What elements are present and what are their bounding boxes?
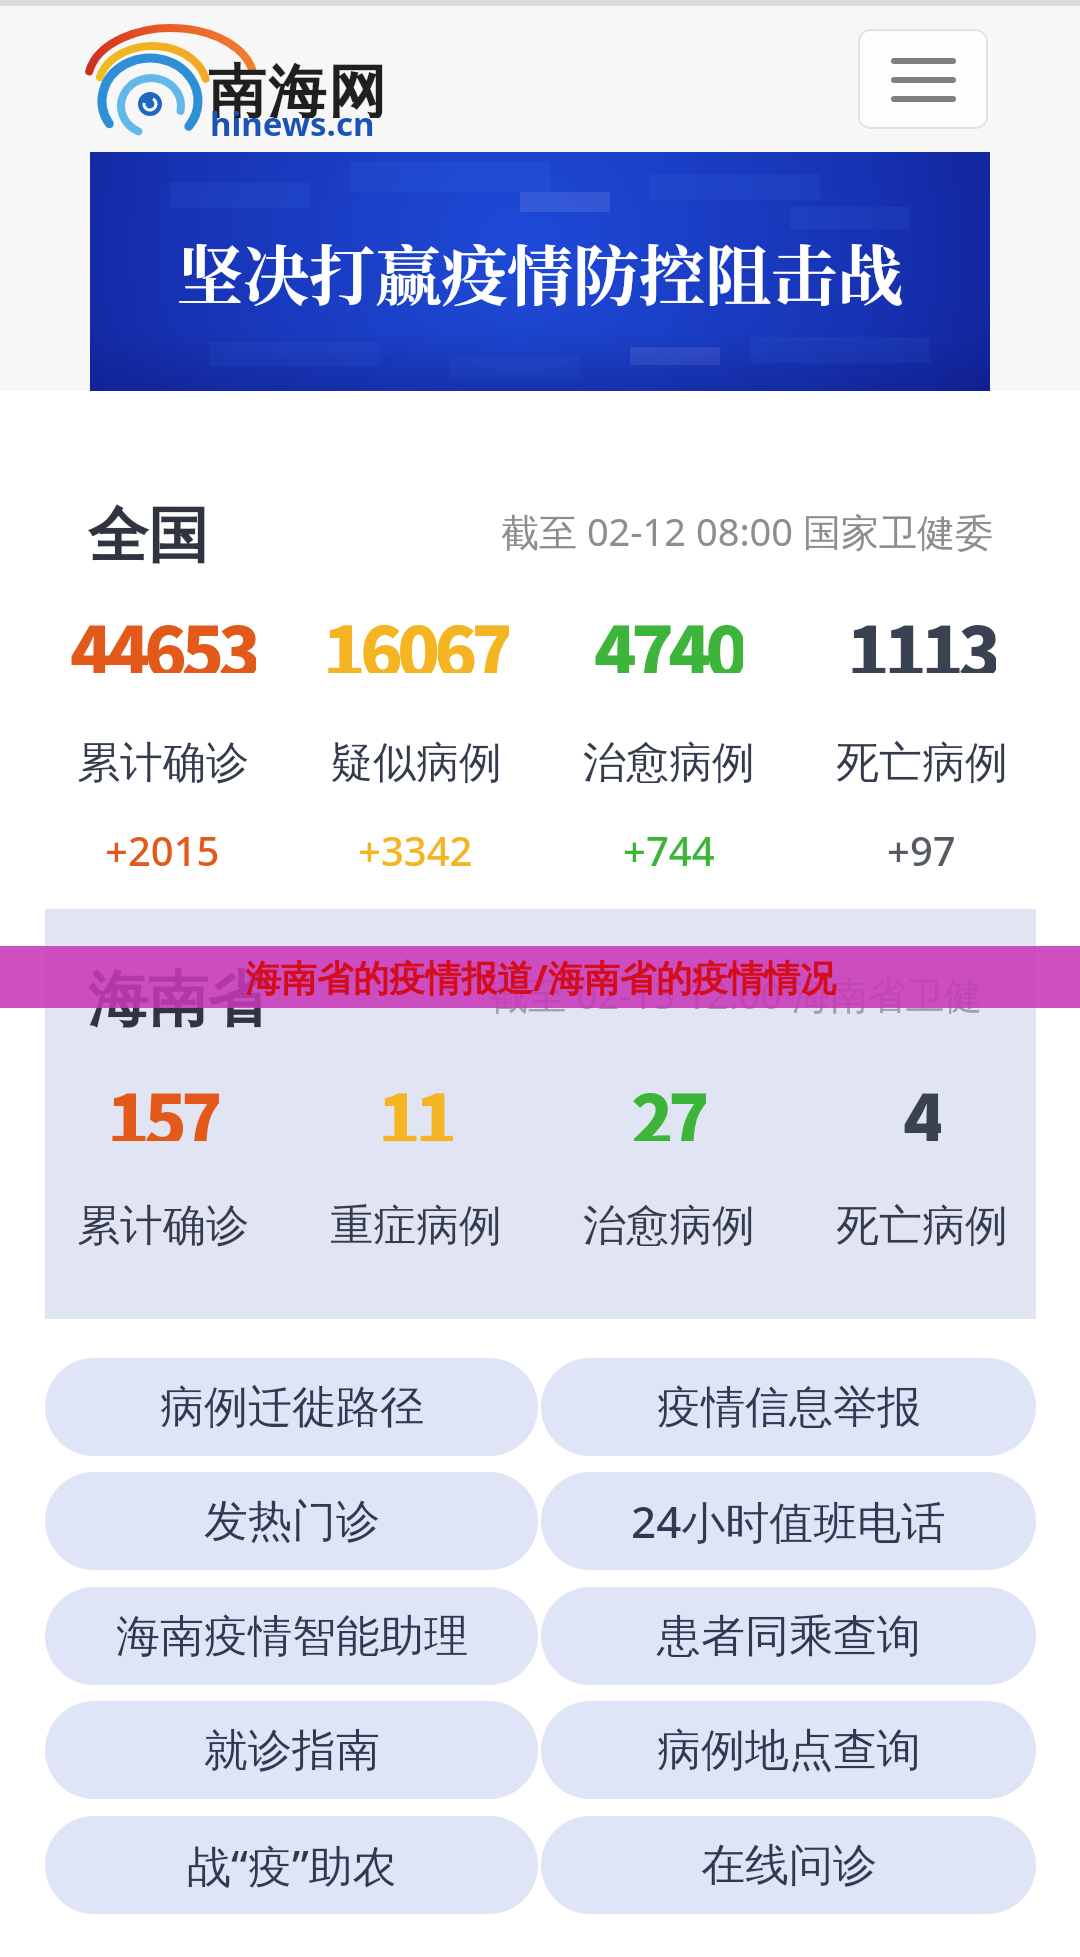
staticText: +97 [887, 823, 956, 867]
staticText: 4 [903, 1065, 941, 1141]
staticText: hinews.cn [210, 101, 375, 137]
staticText: 累计确诊 [77, 1199, 249, 1247]
staticText: 27 [631, 1065, 706, 1141]
staticText: 1113 [847, 597, 996, 673]
staticText: 治愈病例 [583, 1199, 755, 1247]
staticText: 海南省的疫情报道/海南省的疫情情况 [245, 953, 836, 1002]
staticText: 南海网 [207, 56, 387, 118]
staticText: 海南疫情智能助理 [116, 1609, 468, 1664]
staticText: +3342 [358, 823, 473, 867]
staticText: 11 [378, 1065, 453, 1141]
staticText: 战“疫”助农 [187, 1835, 397, 1895]
staticText: +744 [623, 823, 715, 867]
button[interactable]: 24小时值班电话 [541, 1472, 1036, 1570]
staticText: 44653 [70, 597, 256, 673]
staticText: 累计确诊 [77, 736, 249, 784]
button[interactable]: 疫情信息举报 [541, 1358, 1036, 1456]
staticText: 病例迁徙路径 [160, 1380, 424, 1435]
button[interactable]: 海南疫情智能助理 [45, 1587, 538, 1685]
staticText: 24小时值班电话 [631, 1491, 946, 1551]
button[interactable]: 就诊指南 [45, 1701, 538, 1799]
staticText: 截至 02-13 12:00 海南省卫健委 [490, 968, 990, 1016]
staticText: 4740 [594, 597, 743, 673]
staticText: +2015 [105, 823, 220, 867]
staticText: 坚决打赢疫情防控阻击战 [177, 224, 903, 319]
staticText: 157 [107, 1065, 219, 1141]
staticText: 病例地点查询 [657, 1723, 921, 1778]
staticText: 就诊指南 [204, 1723, 380, 1778]
staticText: 在线问诊 [701, 1838, 877, 1893]
staticText: 死亡病例 [836, 736, 1008, 784]
staticText: 患者同乘查询 [657, 1609, 921, 1664]
button[interactable]: 病例迁徙路径 [45, 1358, 538, 1456]
staticText: 疫情信息举报 [657, 1380, 921, 1435]
staticText: 疑似病例 [330, 736, 502, 784]
staticText: 截至 02-12 08:00 国家卫健委 [501, 505, 993, 553]
staticText: 治愈病例 [583, 736, 755, 784]
button[interactable] [858, 29, 988, 129]
button[interactable]: 坚决打赢疫情防控阻击战 [90, 152, 990, 391]
staticText: 海南省 [88, 962, 268, 1030]
staticText: 全国 [88, 498, 208, 566]
button[interactable]: 病例地点查询 [541, 1701, 1036, 1799]
staticText: 重症病例 [330, 1199, 502, 1247]
staticText: 16067 [323, 597, 509, 673]
button[interactable]: 在线问诊 [541, 1816, 1036, 1914]
button[interactable]: 发热门诊 [45, 1472, 538, 1570]
staticText: 死亡病例 [836, 1199, 1008, 1247]
button[interactable]: 患者同乘查询 [541, 1587, 1036, 1685]
button[interactable]: 战“疫”助农 [45, 1816, 538, 1914]
staticText: 发热门诊 [204, 1494, 380, 1549]
